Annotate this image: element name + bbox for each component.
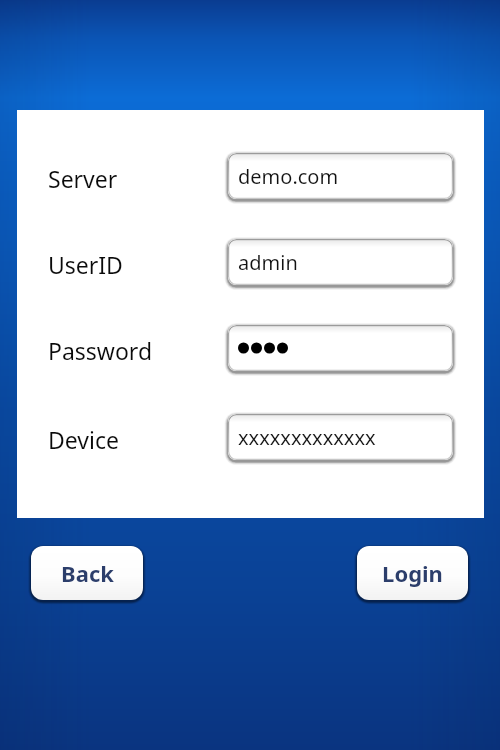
staticText: Password [48, 335, 153, 366]
staticText: Back [61, 558, 114, 588]
staticText: Device [48, 424, 119, 455]
button[interactable] [228, 325, 453, 371]
staticText: admin [238, 249, 298, 276]
button[interactable]: Login [357, 546, 468, 600]
button[interactable]: Back [31, 546, 143, 600]
staticText: Login [382, 558, 443, 588]
staticText: demo.com [238, 163, 339, 190]
button[interactable]: demo.com [228, 153, 453, 199]
button[interactable]: xxxxxxxxxxxxx [228, 414, 453, 460]
staticText: xxxxxxxxxxxxx [238, 424, 376, 451]
staticText: Server [48, 163, 118, 194]
staticText: UserID [48, 249, 123, 280]
button[interactable]: admin [228, 239, 453, 285]
